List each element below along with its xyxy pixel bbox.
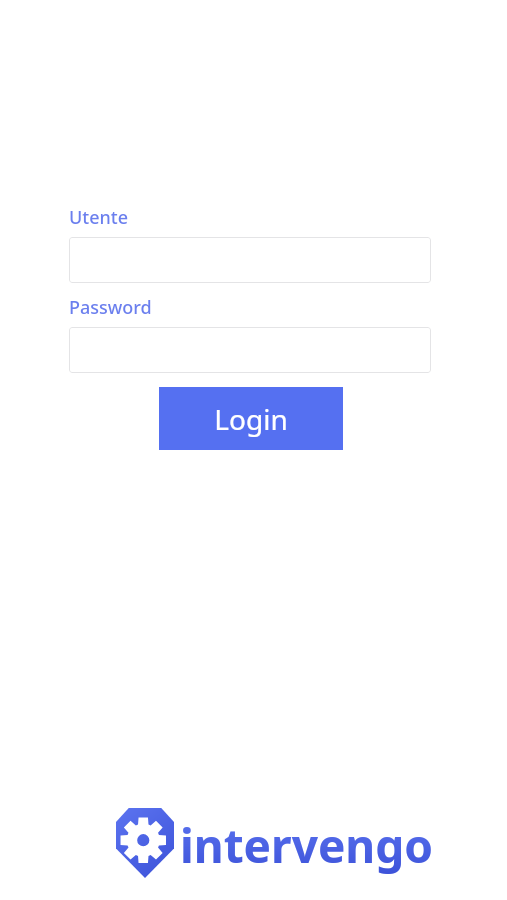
button[interactable] — [69, 327, 431, 373]
button[interactable] — [69, 237, 431, 283]
other: Intervengo logo — [116, 808, 174, 878]
staticText: Utente — [69, 205, 129, 230]
staticText: Login — [214, 400, 288, 438]
staticText: intervengo — [180, 814, 434, 877]
button[interactable]: Login — [159, 387, 343, 450]
staticText: Password — [69, 295, 152, 320]
